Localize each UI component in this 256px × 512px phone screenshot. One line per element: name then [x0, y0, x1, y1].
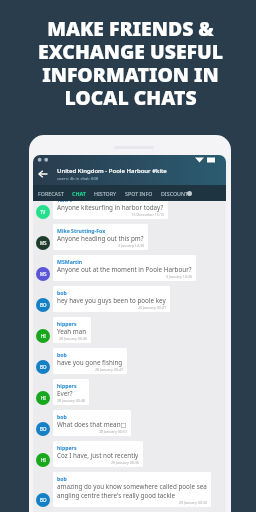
staticText: users: 4k in chat: 608 [57, 176, 99, 182]
button[interactable]: HI [33, 317, 226, 343]
staticText: 3 January 14:36 [57, 274, 192, 279]
staticText: Mike Strutting-Fox [57, 227, 106, 234]
button[interactable]: TV [33, 193, 226, 219]
staticText: LOCAL CHATS [64, 84, 197, 107]
staticText: bob [57, 351, 67, 358]
staticText: EXCHANGE USEFUL [38, 38, 223, 61]
button[interactable]: SPOT INFO [125, 190, 153, 197]
button[interactable]: BO [33, 286, 226, 312]
staticText: 2 January 14:30 [57, 243, 144, 248]
staticText: bob [57, 289, 67, 296]
staticText: Anyone heading out this pm? [57, 234, 144, 243]
staticText: MSMartin [57, 258, 83, 265]
staticText: MS [40, 271, 47, 277]
staticText: Yeah man [57, 327, 87, 336]
button[interactable]: HI [33, 379, 226, 405]
staticText: HI [41, 333, 46, 339]
staticText: SPOT INFO [125, 190, 153, 197]
staticText: CHAT [72, 190, 86, 197]
staticText: Coz I have, just not recently [57, 451, 139, 460]
staticText: HISTORY [94, 190, 117, 197]
button[interactable]: CHAT [72, 190, 86, 197]
staticText: United Kingdom - Poole Harbour #kite [57, 167, 167, 175]
staticText: 29 January 00:30 [57, 460, 139, 465]
button[interactable]: HISTORY [94, 190, 117, 197]
staticText: bob [57, 475, 67, 482]
staticText: 26 January 00:41 [57, 305, 166, 310]
staticText: MS [40, 240, 47, 246]
other: Back [38, 169, 48, 179]
staticText: angling centre there's really good tackl… [57, 491, 175, 500]
button[interactable]: MS [33, 255, 226, 281]
staticText: Anyone kitesurfing in harbor today? [57, 203, 164, 212]
staticText: Ever? [57, 389, 73, 398]
staticText: 28 January 00:51 [57, 429, 127, 434]
staticText: Tom V [57, 196, 73, 203]
staticText: amazing do you know somewhere called poo… [57, 482, 207, 491]
staticText: Anyone out at the moment in Poole Harbou… [57, 265, 192, 274]
staticText: hippers [57, 382, 77, 389]
staticText: 15 December 15:13 [57, 212, 164, 217]
staticText: BO [40, 364, 47, 370]
staticText: bob [57, 413, 67, 420]
staticText: INFORMATION IN [42, 61, 219, 84]
staticText: 29 January 00:34 [57, 500, 207, 505]
staticText: hippers [57, 444, 77, 451]
staticText: HI [41, 457, 46, 463]
button[interactable]: DISCOUNTS [161, 190, 191, 197]
button[interactable]: BO [33, 348, 226, 374]
button[interactable]: FORECAST [38, 190, 64, 197]
button[interactable]: BO [33, 472, 226, 507]
staticText: TV [40, 209, 46, 215]
staticText: BO [40, 497, 47, 503]
staticText: FORECAST [38, 190, 64, 197]
staticText: have you gone fishing [57, 358, 123, 367]
staticText: 28 January 00:47 [57, 367, 123, 372]
staticText: What does that mean□ [57, 420, 127, 429]
staticText: hippers [57, 320, 77, 327]
staticText: 28 January 00:48 [57, 398, 85, 403]
staticText: BO [40, 302, 47, 308]
button[interactable]: MS [33, 224, 226, 250]
staticText: MAKE FRIENDS & [47, 15, 214, 38]
button[interactable]: HI [33, 441, 226, 467]
staticText: hey have you guys been to poole key [57, 296, 166, 305]
staticText: HI [41, 395, 46, 401]
staticText: DISCOUNTS [161, 190, 191, 197]
staticText: BO [40, 426, 47, 432]
button[interactable]: Back [33, 155, 226, 185]
button[interactable]: BO [33, 410, 226, 436]
staticText: 28 January 00:46 [57, 336, 87, 341]
